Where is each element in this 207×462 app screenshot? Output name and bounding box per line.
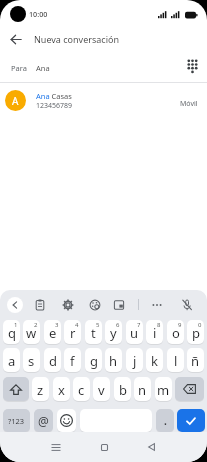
button[interactable]: [59, 296, 77, 314]
staticText: x: [58, 381, 65, 399]
button[interactable]: d: [44, 348, 61, 372]
staticText: ñ: [191, 352, 200, 370]
staticText: g: [90, 352, 98, 370]
button[interactable]: l: [167, 348, 184, 372]
button[interactable]: ñ: [187, 348, 204, 372]
button[interactable]: q: [3, 320, 20, 344]
staticText: i: [153, 324, 157, 342]
staticText: n: [138, 381, 147, 399]
button[interactable]: v: [93, 377, 110, 401]
staticText: y: [110, 324, 117, 342]
staticText: Móvil: [180, 99, 198, 109]
button[interactable]: b: [114, 377, 131, 401]
staticText: .: [164, 414, 167, 428]
button[interactable]: [3, 377, 29, 401]
button[interactable]: z: [32, 377, 49, 401]
staticText: 9: [178, 321, 182, 329]
button[interactable]: a: [3, 348, 20, 372]
staticText: Ana: [36, 63, 50, 73]
button[interactable]: p: [187, 320, 204, 344]
staticText: Nueva conversación: [34, 33, 119, 45]
button[interactable]: [182, 56, 202, 76]
staticText: Para: [11, 63, 27, 73]
button[interactable]: [57, 409, 76, 432]
staticText: Ana Casas: [36, 91, 72, 101]
staticText: v: [98, 381, 105, 399]
button[interactable]: t: [85, 320, 102, 344]
staticText: l: [174, 352, 178, 370]
button[interactable]: e: [44, 320, 61, 344]
button[interactable]: [175, 377, 204, 401]
staticText: 3: [55, 321, 59, 329]
staticText: e: [49, 324, 57, 342]
staticText: 8: [157, 321, 161, 329]
button[interactable]: k: [146, 348, 163, 372]
staticText: f: [70, 352, 75, 370]
staticText: 123456789: [36, 101, 73, 111]
button[interactable]: [96, 439, 112, 455]
staticText: 7: [137, 321, 141, 329]
staticText: 2: [34, 321, 38, 329]
staticText: s: [28, 352, 35, 370]
staticText: o: [172, 324, 180, 342]
button[interactable]: [143, 439, 159, 455]
staticText: w: [26, 324, 37, 342]
staticText: a: [8, 352, 16, 370]
staticText: m: [157, 381, 170, 399]
staticText: r: [70, 324, 76, 342]
staticText: d: [49, 352, 57, 370]
staticText: p: [192, 324, 200, 342]
staticText: k: [151, 352, 158, 370]
button[interactable]: [178, 296, 196, 314]
staticText: u: [130, 324, 139, 342]
button[interactable]: A: [0, 86, 207, 117]
staticText: j: [133, 352, 137, 370]
button[interactable]: n: [134, 377, 151, 401]
button[interactable]: c: [73, 377, 90, 401]
button[interactable]: ?123: [3, 409, 30, 432]
staticText: ?123: [8, 416, 25, 426]
button[interactable]: @: [34, 409, 53, 432]
staticText: 6: [116, 321, 120, 329]
button[interactable]: m: [155, 377, 172, 401]
staticText: z: [37, 381, 44, 399]
staticText: t: [91, 324, 96, 342]
staticText: c: [78, 381, 85, 399]
button[interactable]: [31, 296, 49, 314]
button[interactable]: w: [23, 320, 40, 344]
button[interactable]: f: [64, 348, 81, 372]
staticText: @: [38, 413, 49, 429]
button[interactable]: [86, 296, 104, 314]
button[interactable]: [6, 30, 26, 48]
staticText: 1: [14, 321, 18, 329]
button[interactable]: [110, 296, 128, 314]
button[interactable]: [48, 439, 64, 455]
button[interactable]: h: [105, 348, 122, 372]
button[interactable]: u: [126, 320, 143, 344]
staticText: 4: [75, 321, 79, 329]
staticText: 10:00: [29, 9, 48, 19]
button[interactable]: [148, 296, 166, 314]
button[interactable]: y: [105, 320, 122, 344]
staticText: h: [109, 352, 118, 370]
staticText: A: [12, 94, 19, 108]
button[interactable]: r: [64, 320, 81, 344]
button[interactable]: j: [126, 348, 143, 372]
button[interactable]: [7, 297, 23, 313]
button[interactable]: g: [85, 348, 102, 372]
staticText: 0: [198, 321, 202, 329]
staticText: b: [119, 381, 127, 399]
button[interactable]: .: [156, 409, 174, 432]
button[interactable]: s: [23, 348, 40, 372]
staticText: 5: [96, 321, 100, 329]
button[interactable]: o: [167, 320, 184, 344]
button[interactable]: x: [53, 377, 70, 401]
staticText: q: [8, 324, 16, 342]
button[interactable]: [177, 409, 205, 432]
button[interactable]: i: [146, 320, 163, 344]
